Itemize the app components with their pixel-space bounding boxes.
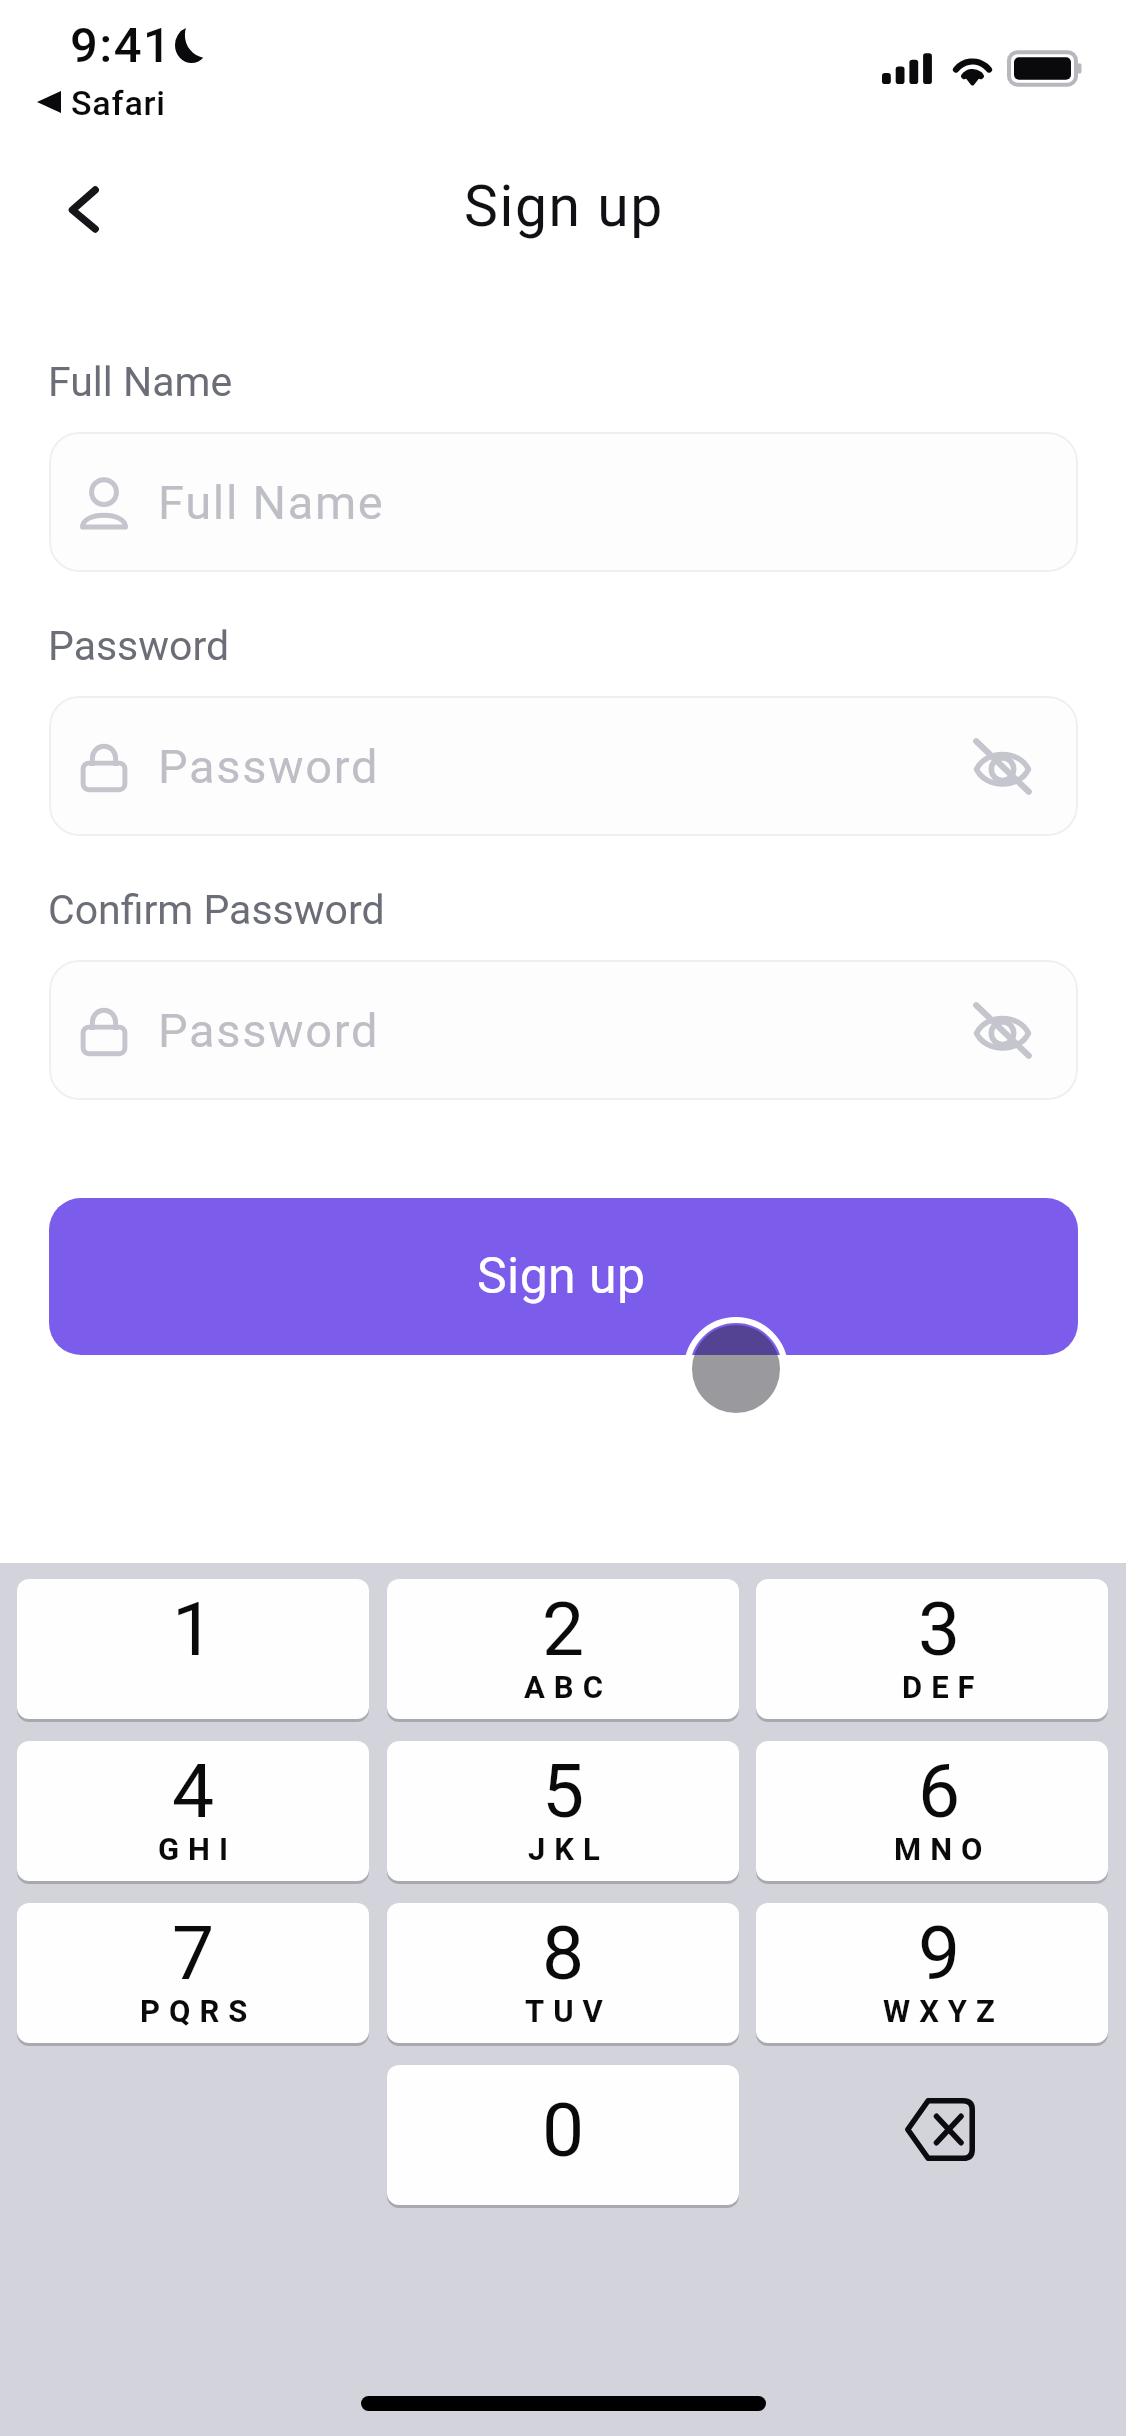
button[interactable]: Full Name <box>49 432 1078 572</box>
staticText: Password <box>158 1003 380 1058</box>
button[interactable]: Password <box>49 696 1078 836</box>
button[interactable]: 8 <box>387 1903 739 2043</box>
button[interactable]: 3 <box>756 1579 1108 1719</box>
staticText: 4 <box>172 1747 215 1835</box>
button[interactable]: 4 <box>17 1741 369 1881</box>
staticText: Safari <box>71 83 166 123</box>
staticText: Full Name <box>48 358 233 406</box>
staticText: ABC <box>524 1669 612 1705</box>
staticText: 7 <box>172 1909 215 1997</box>
button[interactable]: Delete <box>756 2065 1108 2205</box>
staticText: Sign up <box>477 1247 646 1306</box>
staticText: 5 <box>542 1747 585 1835</box>
staticText: 0 <box>542 2086 585 2174</box>
staticText: Full Name <box>158 475 385 530</box>
staticText: 9 <box>918 1909 961 1997</box>
staticText: Confirm Password <box>48 886 385 934</box>
staticText: Password <box>158 739 380 794</box>
button[interactable]: Back <box>40 165 130 255</box>
staticText: Password <box>48 622 230 670</box>
button[interactable]: 0 <box>387 2065 739 2205</box>
staticText: 9:41 <box>70 17 173 74</box>
staticText: 3 <box>918 1585 961 1673</box>
staticText: PQRS <box>140 1993 257 2029</box>
staticText: WXYZ <box>883 1993 1004 2029</box>
staticText: 6 <box>918 1747 961 1835</box>
button[interactable]: 5 <box>387 1741 739 1881</box>
staticText: Sign up <box>464 173 664 240</box>
staticText: TUV <box>525 1993 612 2029</box>
button[interactable]: 1 <box>17 1579 369 1719</box>
button[interactable]: Password <box>49 960 1078 1100</box>
button[interactable]: Show password <box>956 984 1048 1076</box>
button[interactable]: 6 <box>756 1741 1108 1881</box>
button[interactable]: 7 <box>17 1903 369 2043</box>
staticText: 8 <box>542 1909 585 1997</box>
staticText: GHI <box>158 1831 238 1867</box>
button[interactable]: Show password <box>956 720 1048 812</box>
staticText: JKL <box>528 1831 609 1867</box>
staticText: 1 <box>172 1585 215 1673</box>
button[interactable]: Sign up <box>49 1198 1078 1355</box>
staticText: DEF <box>902 1669 984 1705</box>
staticText: MNO <box>894 1831 992 1867</box>
button[interactable]: 2 <box>387 1579 739 1719</box>
button[interactable]: 9 <box>756 1903 1108 2043</box>
staticText: 2 <box>542 1585 585 1673</box>
